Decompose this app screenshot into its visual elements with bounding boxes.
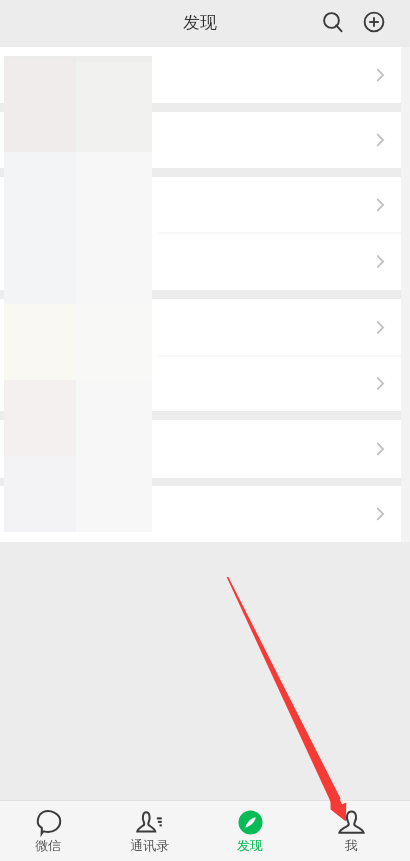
button[interactable]: List item bbox=[0, 420, 410, 478]
button[interactable]: Add bbox=[356, 4, 392, 40]
button[interactable]: List item bbox=[0, 233, 410, 290]
button[interactable]: List item bbox=[0, 486, 410, 542]
button[interactable]: 微信 bbox=[0, 801, 98, 861]
button[interactable]: List item bbox=[0, 299, 410, 356]
staticText: 我 bbox=[345, 837, 358, 853]
button[interactable]: List item bbox=[0, 47, 410, 103]
staticText: 通讯录 bbox=[130, 837, 169, 853]
button[interactable]: 发现 bbox=[200, 801, 300, 861]
button[interactable]: List item bbox=[0, 112, 410, 168]
button[interactable]: List item bbox=[0, 356, 410, 411]
button[interactable]: 通讯录 bbox=[99, 801, 199, 861]
button[interactable]: Search bbox=[314, 4, 350, 40]
button[interactable]: 我 bbox=[301, 801, 401, 861]
staticText: 微信 bbox=[35, 837, 61, 853]
staticText: 发现 bbox=[183, 12, 217, 33]
button[interactable]: List item bbox=[0, 177, 410, 233]
staticText: 发现 bbox=[237, 837, 263, 853]
